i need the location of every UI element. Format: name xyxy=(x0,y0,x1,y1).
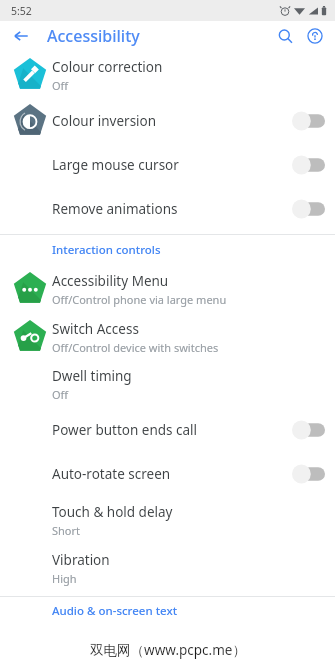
button[interactable]: Audio & on-screen text xyxy=(0,597,335,625)
staticText: Audio & on-screen text xyxy=(52,603,178,619)
button[interactable]: Accessibility Menu xyxy=(0,265,335,313)
staticText: High xyxy=(52,571,77,586)
button[interactable]: Switch Access xyxy=(0,313,335,361)
staticText: Short xyxy=(52,523,81,538)
staticText: Accessibility Menu xyxy=(52,272,169,290)
button[interactable]: Vibration xyxy=(0,544,335,592)
staticText: Off/Control phone via large menu xyxy=(52,292,227,307)
staticText: Vibration xyxy=(52,551,110,569)
button[interactable]: Interaction controls xyxy=(0,235,335,265)
button[interactable]: Power button ends call xyxy=(0,408,335,452)
staticText: Dwell timing xyxy=(52,367,132,385)
button[interactable]: Dwell timing xyxy=(0,361,335,408)
button[interactable]: Search xyxy=(271,22,299,50)
staticText: Interaction controls xyxy=(52,242,161,258)
staticText: Remove animations xyxy=(52,200,178,218)
staticText: Touch & hold delay xyxy=(52,503,173,521)
button[interactable]: Colour correction xyxy=(0,51,335,99)
staticText: 双电网（www.pcpc.me） xyxy=(90,641,246,659)
staticText: Colour correction xyxy=(52,58,163,76)
staticText: Auto-rotate screen xyxy=(52,465,171,483)
button[interactable]: Auto-rotate screen xyxy=(0,452,335,496)
staticText: Colour inversion xyxy=(52,112,157,130)
staticText: Off xyxy=(52,78,69,93)
staticText: Off/Control device with switches xyxy=(52,340,219,355)
button[interactable]: Colour inversion xyxy=(0,99,335,143)
button[interactable]: Back xyxy=(8,23,34,49)
staticText: Large mouse cursor xyxy=(52,156,179,174)
button[interactable]: Large mouse cursor xyxy=(0,143,335,187)
staticText: Off xyxy=(52,387,69,402)
staticText: Switch Access xyxy=(52,320,139,338)
button[interactable]: Help xyxy=(301,22,329,50)
staticText: 5:52 xyxy=(11,4,32,18)
staticText: Accessibility xyxy=(47,25,140,47)
button[interactable]: Remove animations xyxy=(0,187,335,231)
button[interactable]: Touch & hold delay xyxy=(0,496,335,544)
staticText: Power button ends call xyxy=(52,421,198,439)
